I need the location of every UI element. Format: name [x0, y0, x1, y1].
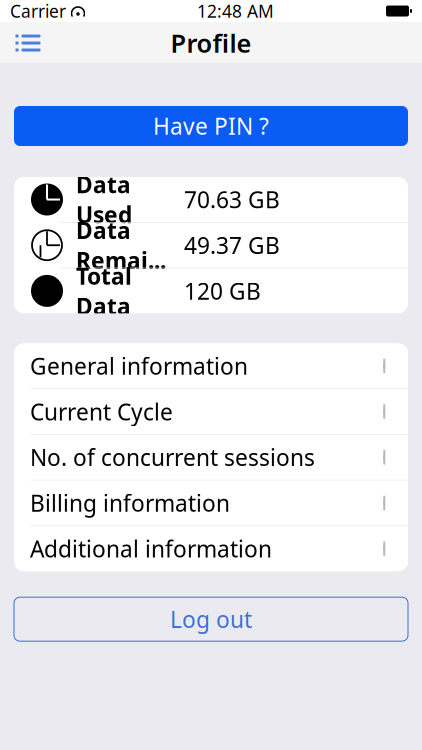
staticText: [66, 0, 71, 22]
staticText: Additional information: [30, 534, 272, 564]
staticText: Current Cycle: [30, 396, 173, 427]
button[interactable]: Have PIN ?: [14, 106, 408, 146]
staticText: 49.37 GB: [184, 230, 280, 260]
staticText: Data Used: [76, 169, 132, 230]
button[interactable]: No. of concurrent sessions: [14, 435, 408, 480]
staticText: Total Data: [76, 261, 132, 321]
staticText: Data Remai...: [76, 215, 166, 275]
staticText: Billing information: [30, 488, 230, 518]
staticText: Log out: [170, 604, 252, 634]
staticText: No. of concurrent sessions: [30, 442, 315, 472]
staticText: Carrier: [10, 0, 66, 22]
staticText: Have PIN ?: [153, 111, 269, 141]
button[interactable]: Billing information: [14, 480, 408, 526]
staticText: General information: [30, 351, 248, 381]
button[interactable]: Current Cycle: [14, 389, 408, 435]
button[interactable]: Menu: [6, 21, 50, 65]
staticText: 120 GB: [184, 276, 261, 306]
button[interactable]: General information: [14, 343, 408, 389]
staticText: 12:48 AM: [197, 0, 274, 22]
button[interactable]: Additional information: [14, 526, 408, 571]
staticText: 70.63 GB: [184, 184, 280, 214]
button[interactable]: Log out: [14, 597, 408, 641]
staticText: Profile: [170, 26, 251, 60]
